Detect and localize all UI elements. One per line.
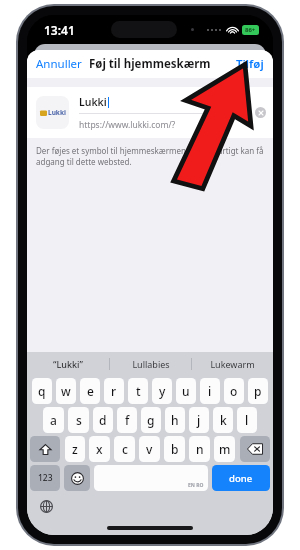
staticText: k bbox=[220, 412, 227, 428]
staticText: u bbox=[182, 383, 190, 399]
staticText: l bbox=[245, 412, 249, 428]
staticText: t bbox=[136, 383, 141, 399]
button[interactable]: e bbox=[80, 378, 100, 404]
button[interactable]: Emoji bbox=[64, 465, 90, 491]
button[interactable]: EN RO bbox=[94, 465, 208, 491]
button[interactable]: Annuller bbox=[27, 52, 91, 76]
button[interactable]: “Lukki” bbox=[27, 352, 109, 375]
button[interactable]: h bbox=[165, 407, 185, 433]
button[interactable]: z bbox=[65, 436, 85, 462]
staticText: b bbox=[171, 441, 179, 457]
staticText: n bbox=[196, 441, 204, 457]
staticText: z bbox=[72, 441, 78, 457]
button[interactable]: u bbox=[176, 378, 196, 404]
button[interactable]: y bbox=[152, 378, 172, 404]
staticText: Der føjes et symbol til hjemmeskærmen, s… bbox=[36, 145, 264, 167]
button[interactable]: k bbox=[213, 407, 233, 433]
staticText: v bbox=[146, 441, 153, 457]
button[interactable]: v bbox=[139, 436, 160, 462]
staticText: x bbox=[96, 441, 103, 457]
staticText: 123 bbox=[38, 472, 53, 484]
staticText: f bbox=[125, 412, 130, 428]
staticText: p bbox=[254, 383, 262, 399]
staticText: r bbox=[111, 383, 117, 399]
button[interactable]: Ryd tekst bbox=[255, 107, 266, 118]
button[interactable]: n bbox=[189, 436, 210, 462]
button[interactable]: w bbox=[56, 378, 76, 404]
staticText: Lullabies bbox=[132, 358, 170, 370]
staticText: g bbox=[147, 412, 155, 428]
staticText: d bbox=[99, 412, 107, 428]
staticText: Annuller bbox=[36, 56, 82, 72]
staticText: o bbox=[230, 383, 238, 399]
button[interactable]: r bbox=[104, 378, 124, 404]
button[interactable]: c bbox=[114, 436, 135, 462]
button[interactable]: t bbox=[128, 378, 148, 404]
staticText: i bbox=[208, 383, 212, 399]
button[interactable]: o bbox=[224, 378, 244, 404]
staticText: a bbox=[50, 412, 57, 428]
staticText: c bbox=[122, 441, 128, 457]
staticText: Lukewarm bbox=[210, 358, 255, 370]
staticText: 86+ bbox=[245, 26, 256, 34]
button[interactable]: Skift tastatur bbox=[39, 499, 53, 513]
staticText: s bbox=[76, 412, 82, 428]
button[interactable]: i bbox=[200, 378, 220, 404]
button[interactable]: d bbox=[93, 407, 113, 433]
button[interactable]: Lukewarm bbox=[192, 352, 273, 375]
staticText: e bbox=[87, 383, 94, 399]
staticText: https://www.lukki.com/?utm_source=wm&utm… bbox=[79, 119, 249, 131]
staticText: Lukki bbox=[79, 95, 107, 109]
button[interactable]: Lullabies bbox=[110, 352, 191, 375]
button[interactable]: Skift bbox=[30, 436, 60, 462]
button[interactable]: s bbox=[68, 407, 89, 433]
staticText: Tilføj bbox=[236, 56, 264, 72]
staticText: Føj til hjemmeskærm bbox=[89, 56, 211, 72]
button[interactable]: done bbox=[212, 465, 270, 491]
button[interactable]: p bbox=[248, 378, 268, 404]
staticText: j bbox=[197, 412, 201, 428]
button[interactable]: g bbox=[141, 407, 161, 433]
button[interactable]: Tilføj bbox=[227, 52, 273, 76]
staticText: 13:41 bbox=[44, 22, 75, 38]
button[interactable]: m bbox=[214, 436, 235, 462]
staticText: m bbox=[219, 441, 231, 457]
button[interactable]: q bbox=[32, 378, 52, 404]
button[interactable]: 123 bbox=[30, 465, 60, 491]
staticText: EN RO bbox=[188, 482, 204, 489]
staticText: q bbox=[38, 383, 46, 399]
staticText: h bbox=[171, 412, 179, 428]
button[interactable]: b bbox=[164, 436, 185, 462]
button[interactable]: j bbox=[189, 407, 209, 433]
button[interactable]: x bbox=[89, 436, 110, 462]
button[interactable]: l bbox=[237, 407, 257, 433]
button[interactable]: f bbox=[117, 407, 137, 433]
button[interactable]: Slet bbox=[240, 436, 270, 462]
staticText: done bbox=[229, 472, 253, 485]
staticText: w bbox=[61, 383, 71, 399]
staticText: y bbox=[159, 383, 166, 399]
staticText: “Lukki” bbox=[53, 358, 83, 370]
staticText: Lukki bbox=[48, 108, 66, 117]
button[interactable]: a bbox=[43, 407, 64, 433]
